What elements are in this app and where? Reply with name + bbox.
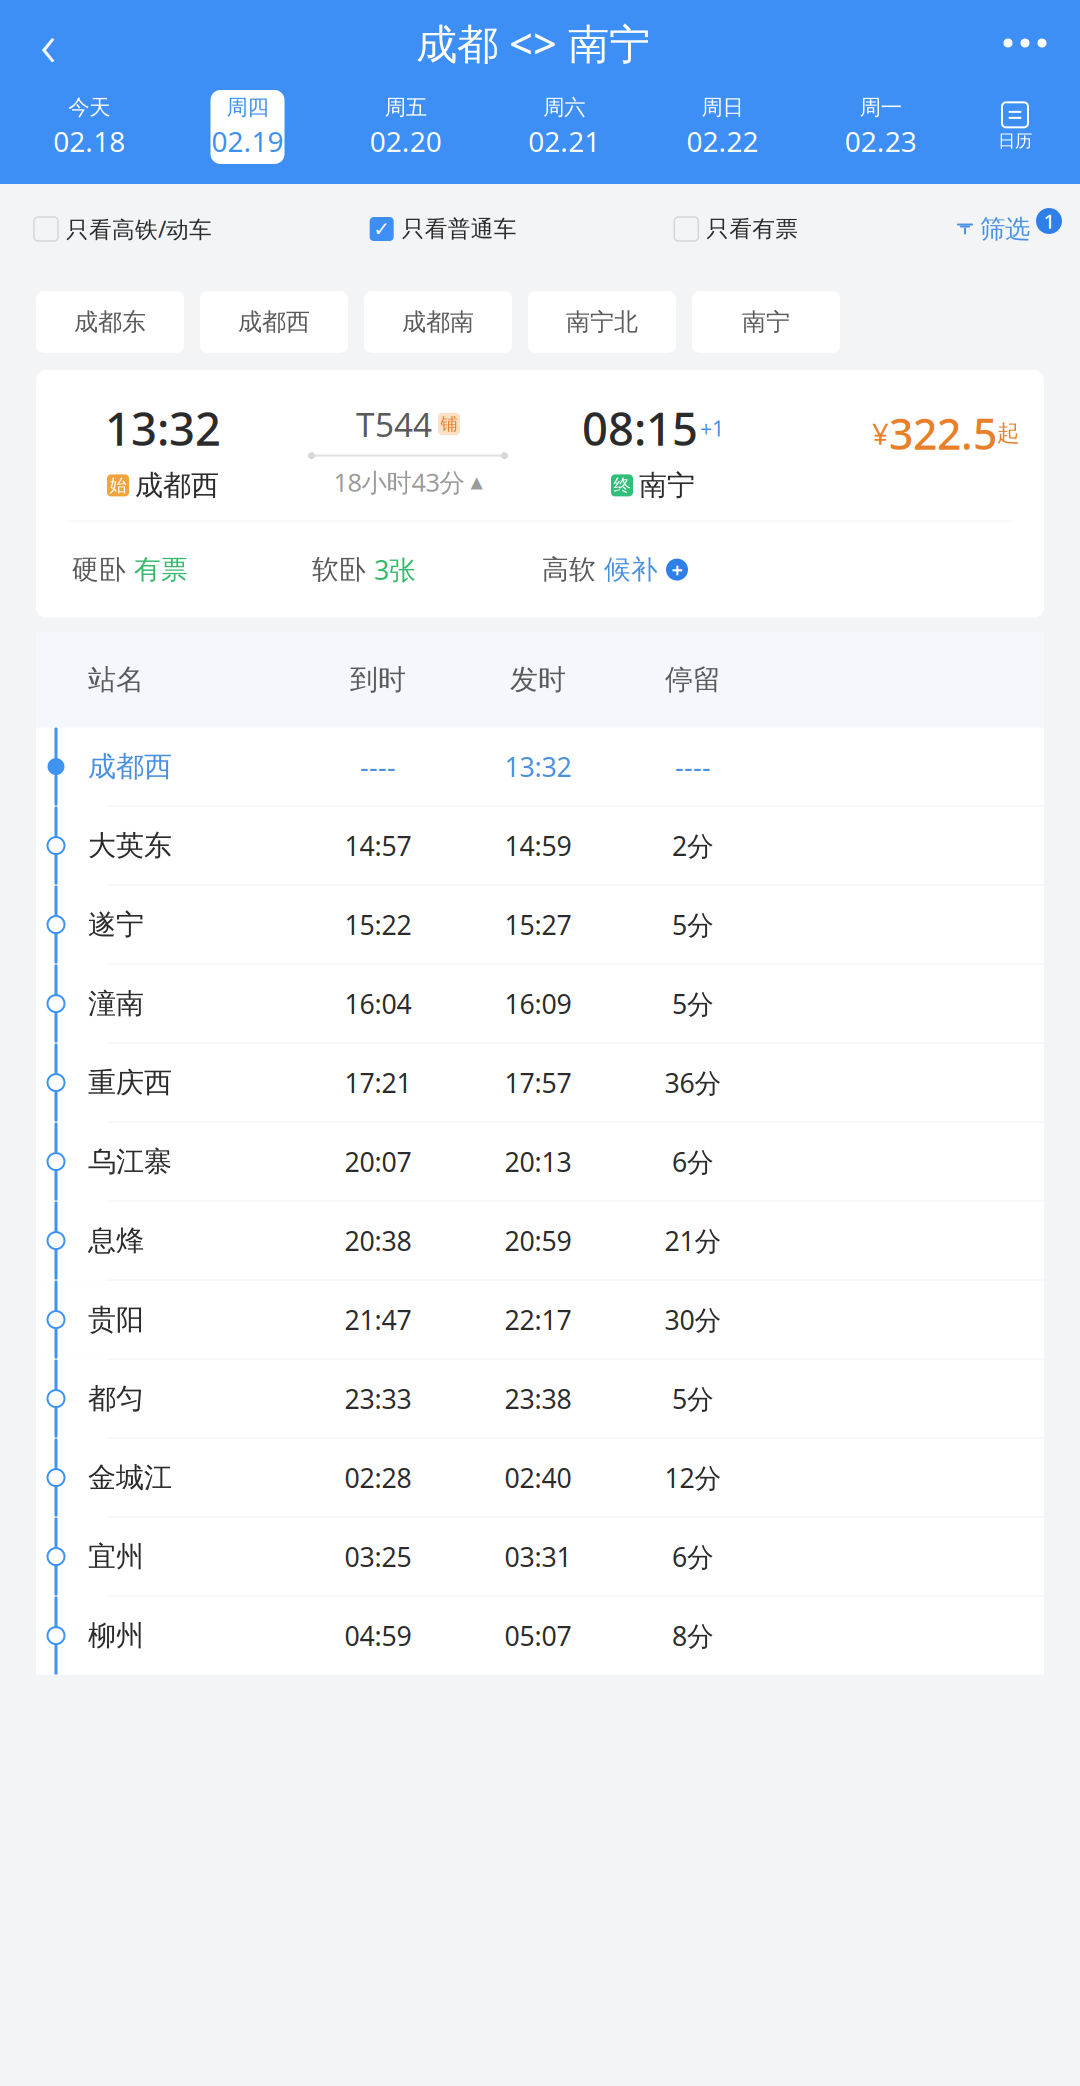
staticText: 息烽 bbox=[88, 1223, 144, 1258]
button[interactable]: 都匀 bbox=[36, 1360, 1044, 1439]
button[interactable]: 今天 bbox=[52, 90, 126, 164]
staticText: 成都东 bbox=[74, 307, 146, 337]
staticText: 02:40 bbox=[504, 1460, 571, 1495]
staticText: 02.19 bbox=[211, 122, 283, 160]
staticText: 周四 bbox=[226, 94, 268, 120]
button[interactable]: 重庆西 bbox=[36, 1044, 1044, 1123]
staticText: 02.21 bbox=[528, 122, 600, 160]
button[interactable]: 柳州 bbox=[36, 1597, 1044, 1675]
staticText: 30分 bbox=[664, 1302, 721, 1337]
staticText: 有票 bbox=[134, 553, 188, 586]
staticText: 04:59 bbox=[344, 1618, 411, 1653]
button[interactable]: 周日 bbox=[685, 90, 759, 164]
staticText: 16:09 bbox=[504, 986, 571, 1021]
staticText: 05:07 bbox=[504, 1618, 571, 1653]
staticText: 02:28 bbox=[344, 1460, 411, 1495]
staticText: ‹ bbox=[40, 2, 56, 84]
staticText: 20:59 bbox=[504, 1223, 571, 1258]
staticText: 只看高铁/动车 bbox=[66, 214, 212, 244]
staticText: 02.23 bbox=[845, 122, 917, 160]
staticText: 成都南 bbox=[402, 307, 474, 337]
button[interactable]: 周一 bbox=[844, 90, 918, 164]
staticText: 03:31 bbox=[504, 1539, 571, 1574]
staticText: 周六 bbox=[543, 94, 585, 120]
staticText: 15:27 bbox=[504, 907, 571, 942]
staticText: 20:38 bbox=[344, 1223, 411, 1258]
staticText: 金城江 bbox=[88, 1460, 172, 1495]
button[interactable]: 只看高铁/动车 bbox=[34, 214, 212, 244]
staticText: 5分 bbox=[672, 907, 714, 942]
button[interactable]: 筛选 bbox=[956, 208, 1062, 250]
button[interactable]: 成都西 bbox=[200, 291, 348, 353]
button[interactable]: 成都东 bbox=[36, 291, 184, 353]
staticText: 08:15 bbox=[582, 398, 698, 458]
staticText: 17:57 bbox=[504, 1065, 571, 1100]
staticText: 23:33 bbox=[344, 1381, 411, 1416]
staticText: +1 bbox=[700, 414, 724, 442]
button[interactable]: 成都南 bbox=[364, 291, 512, 353]
staticText: 15:22 bbox=[344, 907, 411, 942]
button[interactable]: 周四 bbox=[210, 90, 284, 164]
button[interactable]: 只看有票 bbox=[674, 215, 798, 243]
staticText: 重庆西 bbox=[88, 1065, 172, 1100]
staticText: 23:38 bbox=[504, 1381, 571, 1416]
staticText: 高软 bbox=[542, 553, 596, 586]
button[interactable]: Back bbox=[0, 7, 96, 79]
button[interactable]: 遂宁 bbox=[36, 886, 1044, 965]
staticText: 1 bbox=[1043, 208, 1054, 234]
staticText: 13:32 bbox=[105, 398, 221, 458]
button[interactable]: 成都西 bbox=[36, 728, 1044, 807]
staticText: 都匀 bbox=[88, 1381, 144, 1416]
button[interactable]: 金城江 bbox=[36, 1439, 1044, 1518]
staticText: 14:59 bbox=[504, 828, 571, 863]
button[interactable]: More options bbox=[970, 7, 1080, 79]
button[interactable]: Open calendar bbox=[960, 86, 1070, 168]
staticText: 硬卧 bbox=[72, 553, 126, 586]
button[interactable]: 大英东 bbox=[36, 807, 1044, 886]
button[interactable]: 贵阳 bbox=[36, 1281, 1044, 1360]
button[interactable]: 周五 bbox=[369, 90, 443, 164]
staticText: 贵阳 bbox=[88, 1302, 144, 1337]
staticText: 3张 bbox=[374, 552, 416, 587]
button[interactable]: 息烽 bbox=[36, 1202, 1044, 1281]
staticText: 16:04 bbox=[344, 986, 411, 1021]
staticText: 今天 bbox=[68, 94, 110, 120]
staticText: 5分 bbox=[672, 986, 714, 1021]
staticText: 站名 bbox=[88, 662, 144, 697]
button[interactable]: 南宁 bbox=[692, 291, 840, 353]
staticText: 成都西 bbox=[135, 468, 219, 503]
staticText: 软卧 bbox=[312, 553, 366, 586]
staticText: 36分 bbox=[664, 1065, 721, 1100]
staticText: 6分 bbox=[672, 1539, 714, 1574]
staticText: 柳州 bbox=[88, 1618, 144, 1653]
staticText: 只看普通车 bbox=[402, 215, 517, 243]
button[interactable]: ✓ bbox=[370, 215, 517, 243]
staticText: 宜州 bbox=[88, 1539, 144, 1574]
staticText: ¥ bbox=[872, 414, 889, 453]
button[interactable]: 乌江寨 bbox=[36, 1123, 1044, 1202]
staticText: 18小时43分 bbox=[333, 465, 464, 499]
staticText: 南宁北 bbox=[566, 307, 638, 337]
staticText: 到时 bbox=[350, 662, 406, 697]
staticText: 南宁 bbox=[742, 307, 790, 337]
staticText: 6分 bbox=[672, 1144, 714, 1179]
staticText: 只看有票 bbox=[706, 215, 798, 243]
staticText: ---- bbox=[675, 749, 711, 784]
staticText: 02.22 bbox=[686, 122, 758, 160]
button[interactable]: 13:32 bbox=[36, 370, 1044, 618]
button[interactable]: 南宁北 bbox=[528, 291, 676, 353]
staticText: + bbox=[671, 556, 682, 583]
staticText: 13:32 bbox=[504, 749, 571, 784]
button[interactable]: 潼南 bbox=[36, 965, 1044, 1044]
button[interactable]: 周六 bbox=[527, 90, 601, 164]
button[interactable]: 宜州 bbox=[36, 1518, 1044, 1597]
staticText: 潼南 bbox=[88, 986, 144, 1021]
staticText: 03:25 bbox=[344, 1539, 411, 1574]
staticText: 候补 bbox=[604, 553, 658, 586]
staticText: 遂宁 bbox=[88, 907, 144, 942]
staticText: 02.18 bbox=[53, 122, 125, 160]
staticText: 5分 bbox=[672, 1381, 714, 1416]
staticText: 南宁 bbox=[639, 468, 695, 503]
staticText: 终 bbox=[613, 475, 630, 496]
staticText: 周日 bbox=[701, 94, 743, 120]
